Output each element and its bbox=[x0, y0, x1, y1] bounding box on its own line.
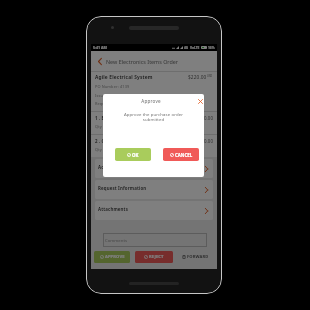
staticText: Action Information bbox=[98, 164, 143, 170]
staticText: Agile Electrical System bbox=[95, 74, 153, 81]
staticText: 5:41 AM bbox=[93, 45, 107, 50]
button[interactable]: FORWARD bbox=[177, 251, 213, 263]
staticText: Attachments bbox=[98, 206, 129, 212]
button[interactable]: APPROVE bbox=[94, 251, 130, 263]
staticText: Requested By: David Smith bbox=[95, 101, 148, 106]
button[interactable]: REJECT bbox=[135, 251, 173, 263]
staticText: New Electronics Items Order bbox=[106, 58, 179, 65]
button[interactable]: Back bbox=[95, 57, 104, 66]
staticText: $110.00 bbox=[95, 115, 213, 121]
staticText: Qty : 2 bbox=[95, 124, 108, 129]
staticText: 4G bbox=[184, 46, 189, 50]
staticText: Comments bbox=[105, 237, 128, 243]
staticText: $110.00 bbox=[95, 138, 213, 144]
staticText: 2 . Copper Wire Bundle bbox=[95, 138, 148, 144]
staticText: CANCEL bbox=[175, 152, 193, 158]
button[interactable]: Comments bbox=[103, 233, 207, 247]
staticText: FORWARD bbox=[187, 254, 209, 260]
staticText: Request Information bbox=[98, 185, 147, 191]
staticText: APPROVE bbox=[105, 254, 125, 260]
staticText: Approve bbox=[105, 98, 197, 104]
staticText: Qty : 4 bbox=[95, 147, 108, 152]
staticText: VoLTE bbox=[190, 46, 200, 50]
staticText: 1 . Electric Motor Pump bbox=[95, 115, 149, 121]
staticText: Approve the purchase order submitted bbox=[121, 111, 186, 122]
staticText: REJECT bbox=[149, 254, 164, 260]
staticText: $220.00 bbox=[188, 74, 207, 81]
staticText: Issue Date: 12/02/2019 bbox=[95, 93, 140, 98]
button[interactable]: Action Information bbox=[95, 159, 213, 178]
button[interactable]: Request Information bbox=[95, 180, 213, 199]
staticText: 16% bbox=[208, 46, 215, 50]
staticText: OK bbox=[132, 152, 139, 158]
button[interactable]: Close dialog bbox=[196, 97, 204, 106]
button[interactable]: OK bbox=[115, 148, 151, 161]
staticText: PO Number: 4139 bbox=[95, 84, 130, 89]
staticText: USD bbox=[207, 74, 213, 78]
button[interactable]: Attachments bbox=[95, 201, 213, 220]
button[interactable]: CANCEL bbox=[163, 148, 199, 161]
